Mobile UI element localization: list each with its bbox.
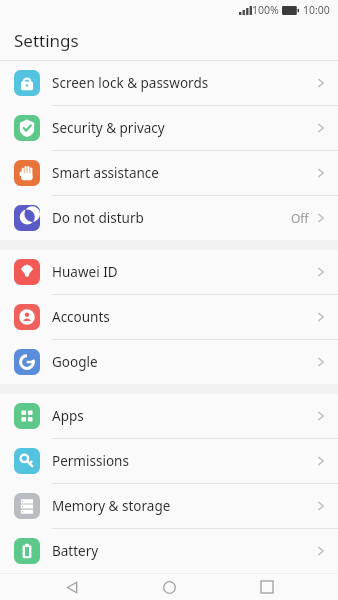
button[interactable]: Permissions [0, 439, 338, 483]
button[interactable]: Do not disturb [0, 196, 338, 240]
staticText: Accounts [52, 308, 110, 326]
staticText: Security & privacy [52, 119, 165, 137]
staticText: Permissions [52, 452, 129, 470]
button[interactable]: Huawei ID [0, 250, 338, 294]
button[interactable]: Accounts [0, 295, 338, 339]
staticText: Screen lock & passwords [52, 74, 209, 92]
button[interactable]: Recents [241, 574, 293, 600]
button[interactable]: Apps [0, 394, 338, 438]
staticText: 10:00 [303, 3, 330, 17]
staticText: Memory & storage [52, 497, 171, 515]
staticText: 100% [252, 3, 279, 17]
staticText: Smart assistance [52, 164, 159, 182]
staticText: Do not disturb [52, 209, 144, 227]
button[interactable]: Smart assistance [0, 151, 338, 195]
button[interactable]: Google [0, 340, 338, 384]
staticText: Google [52, 353, 98, 371]
staticText: Huawei ID [52, 263, 118, 281]
button[interactable]: Back [46, 574, 98, 600]
button[interactable]: Screen lock & passwords [0, 61, 338, 105]
staticText: Settings [14, 29, 79, 52]
button[interactable]: Battery [0, 529, 338, 573]
button[interactable]: Memory & storage [0, 484, 338, 528]
button[interactable]: Home [143, 574, 195, 600]
staticText: Off [291, 210, 309, 226]
staticText: Battery [52, 542, 99, 560]
staticText: Apps [52, 407, 84, 425]
button[interactable]: Security & privacy [0, 106, 338, 150]
